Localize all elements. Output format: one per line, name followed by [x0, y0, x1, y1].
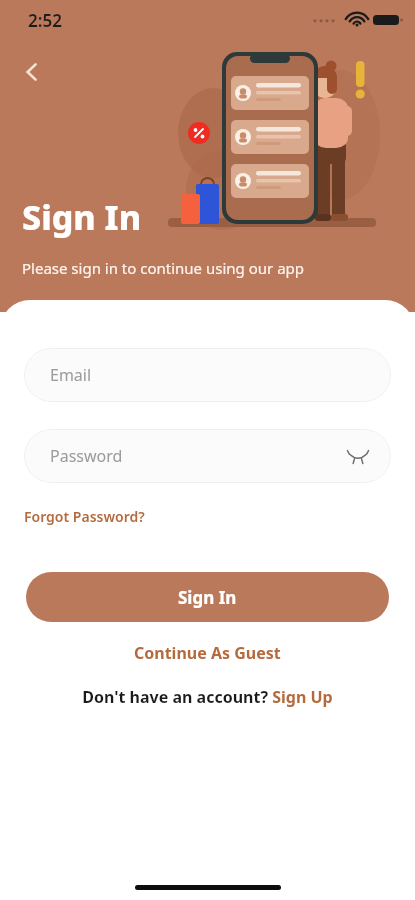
staticText: 2:52 [28, 9, 62, 32]
button[interactable]: Don't have an account? Sign Up [74, 682, 341, 712]
staticText: Sign In [178, 586, 237, 609]
staticText: Please sign in to continue using our app [22, 258, 305, 278]
button[interactable]: Show password [341, 439, 375, 473]
button[interactable]: Continue As Guest [124, 636, 291, 670]
button[interactable]: Forgot Password? [24, 505, 145, 528]
staticText: Don't have an account? Sign Up [82, 686, 333, 708]
staticText: Forgot Password? [24, 507, 145, 526]
staticText: Password [50, 445, 123, 467]
staticText: Email [50, 364, 92, 386]
button[interactable]: Back [12, 52, 52, 92]
button[interactable]: Email [24, 348, 391, 402]
button[interactable]: Sign In [26, 572, 389, 622]
button[interactable]: Password [24, 429, 391, 483]
staticText: Continue As Guest [134, 642, 281, 664]
staticText: Sign In [22, 194, 142, 240]
